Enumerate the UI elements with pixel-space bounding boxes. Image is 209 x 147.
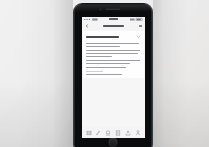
button[interactable]: Back xyxy=(82,21,91,30)
button[interactable]: Markup xyxy=(93,127,103,138)
button[interactable]: Notes xyxy=(113,127,123,138)
button[interactable]: Highlight xyxy=(103,127,113,138)
button[interactable]: More xyxy=(136,21,145,30)
button[interactable]: Library xyxy=(84,127,93,138)
button[interactable]: Info xyxy=(133,127,143,138)
button[interactable]: Share xyxy=(123,127,133,138)
